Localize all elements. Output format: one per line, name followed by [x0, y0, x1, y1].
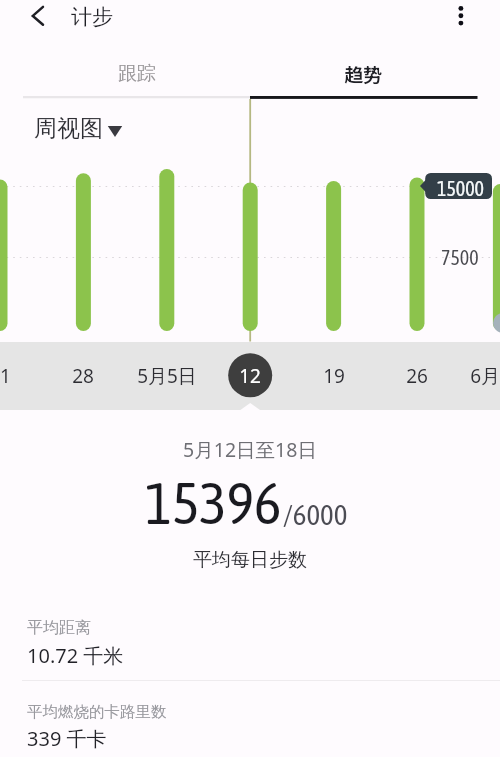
staticText: 28 — [33, 363, 133, 389]
staticText: 计步 — [71, 4, 113, 30]
staticText: 跟踪 — [118, 62, 156, 86]
staticText: 15000 — [437, 177, 484, 200]
button[interactable]: 平均距离 — [0, 612, 500, 680]
button[interactable]: More options — [449, 0, 477, 28]
button[interactable]: 趋势 — [250, 50, 477, 98]
button[interactable]: 周视图 — [34, 114, 125, 143]
button[interactable]: Back — [23, 0, 55, 32]
staticText: 12 — [200, 363, 300, 389]
button[interactable]: 平均燃烧的卡路里数 — [0, 697, 500, 757]
staticText: 10.72 千米 — [27, 642, 124, 669]
staticText: 19 — [284, 363, 384, 389]
staticText: 平均距离 — [27, 618, 91, 638]
staticText: /6000 — [283, 498, 348, 531]
staticText: 7500 — [441, 246, 479, 269]
staticText: 平均每日步数 — [0, 548, 500, 572]
staticText: 5月12日至18日 — [0, 436, 500, 463]
staticText: 5月5日 — [117, 363, 217, 389]
staticText: 6月2日 — [450, 363, 500, 389]
staticText: 26 — [367, 363, 467, 389]
staticText: 339 千卡 — [27, 725, 107, 752]
staticText: 15396 — [145, 470, 282, 536]
staticText: 趋势 — [344, 60, 383, 88]
staticText: 周视图 — [34, 114, 103, 143]
staticText: 21 — [0, 363, 50, 389]
staticText: 平均燃烧的卡路里数 — [27, 702, 167, 722]
button[interactable]: 跟踪 — [23, 50, 250, 98]
